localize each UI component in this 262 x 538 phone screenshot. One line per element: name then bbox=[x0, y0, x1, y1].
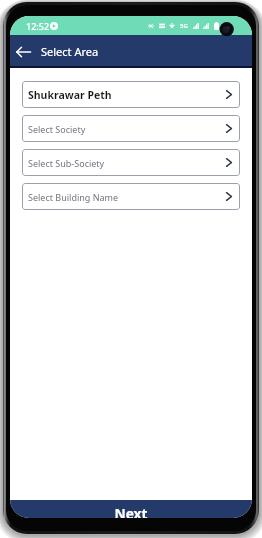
staticText: Select Building Name bbox=[28, 191, 119, 203]
staticText: Select Society bbox=[28, 123, 86, 135]
staticText: Select Area bbox=[41, 44, 99, 59]
button[interactable]: Select Society bbox=[22, 115, 240, 142]
staticText: 5G bbox=[180, 22, 188, 30]
button[interactable]: Back bbox=[12, 39, 34, 65]
staticText: 12:52 bbox=[26, 20, 50, 32]
button[interactable]: Next bbox=[10, 500, 252, 518]
button[interactable]: Select Building Name bbox=[22, 183, 240, 210]
staticText: Shukrawar Peth bbox=[28, 88, 112, 102]
button[interactable]: Shukrawar Peth bbox=[22, 81, 240, 108]
staticText: Next bbox=[114, 504, 148, 518]
staticText: Select Sub-Society bbox=[28, 157, 105, 169]
button[interactable]: Select Sub-Society bbox=[22, 149, 240, 176]
